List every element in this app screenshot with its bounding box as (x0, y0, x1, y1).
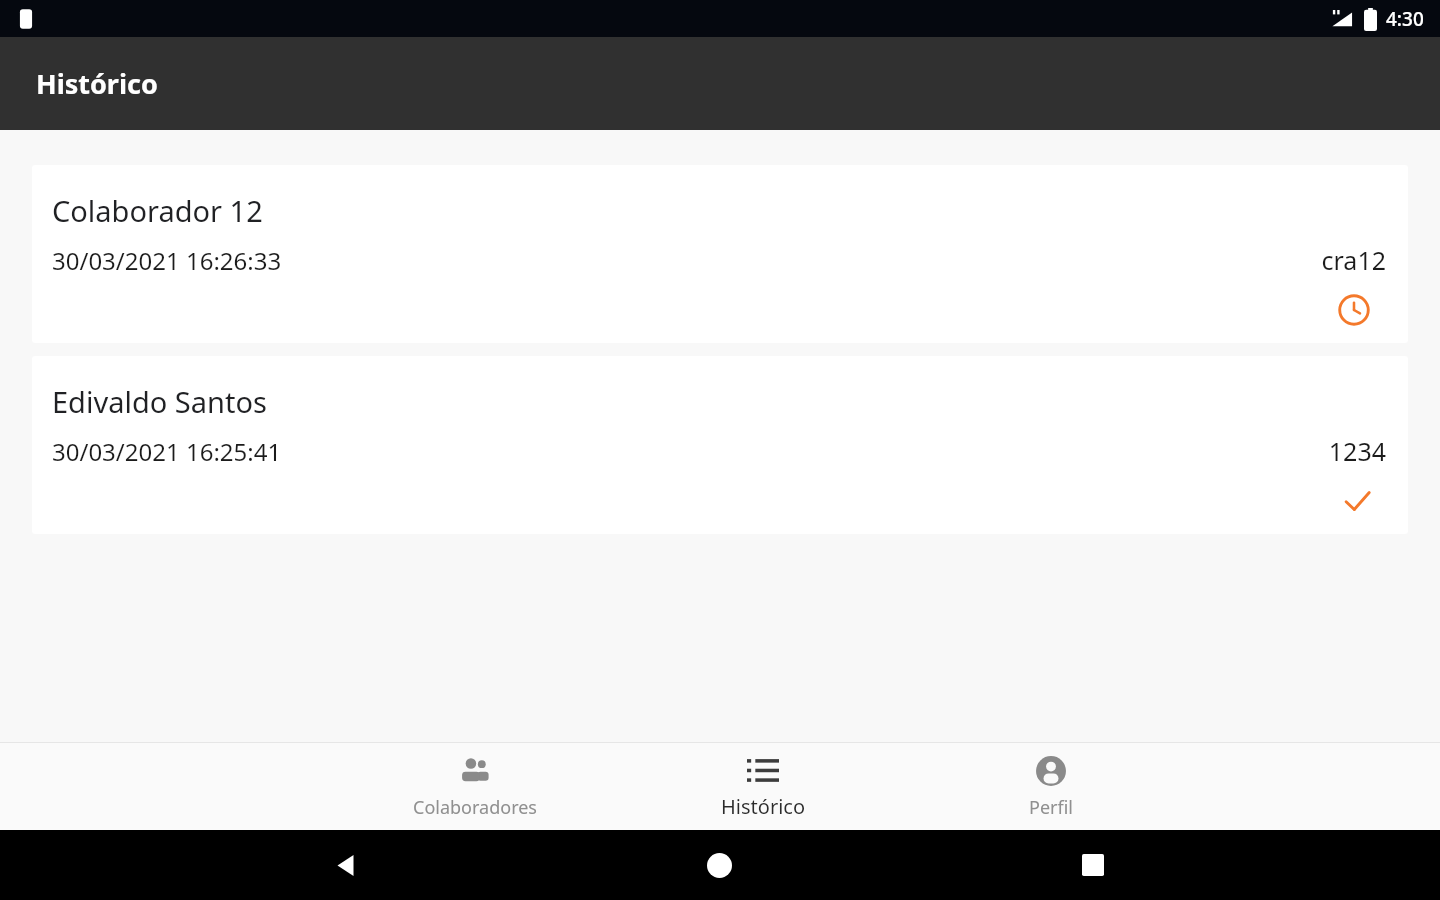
staticText: cra12 (1321, 243, 1386, 277)
button[interactable]: Recent apps (1066, 838, 1120, 892)
button[interactable]: Histórico (619, 746, 907, 828)
button[interactable]: Edivaldo Santos (32, 356, 1408, 534)
button[interactable]: Colaboradores (331, 746, 619, 828)
other: Perfil (1034, 754, 1068, 788)
staticText: Histórico (721, 793, 805, 820)
staticText: Perfil (1029, 795, 1073, 820)
other: Histórico (747, 754, 779, 786)
other: Colaboradores (458, 754, 492, 788)
button[interactable]: Colaborador 12 (32, 165, 1408, 343)
staticText: Colaborador 12 (52, 191, 263, 230)
staticText: 30/03/2021 16:26:33 (52, 244, 282, 277)
staticText: Colaboradores (413, 795, 537, 820)
staticText: 30/03/2021 16:25:41 (52, 435, 282, 468)
staticText: Edivaldo Santos (52, 382, 267, 421)
staticText: 1234 (1328, 434, 1386, 468)
button[interactable]: Home (692, 838, 746, 892)
staticText: Histórico (36, 65, 158, 102)
button[interactable]: Perfil (907, 746, 1195, 828)
button[interactable]: Back (319, 838, 373, 892)
staticText: 4:30 (1386, 6, 1424, 32)
